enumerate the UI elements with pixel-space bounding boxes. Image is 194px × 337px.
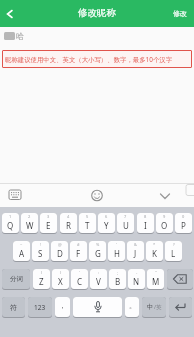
button[interactable]: @ [51, 241, 68, 261]
staticText: 9 [163, 214, 166, 219]
staticText: - [136, 270, 138, 275]
staticText: O [161, 220, 168, 231]
staticText: I [144, 220, 147, 231]
staticText: & [134, 242, 137, 247]
staticText: ; [117, 270, 119, 275]
staticText: ' [79, 270, 80, 275]
staticText: K [152, 248, 157, 259]
staticText: @ [58, 242, 62, 247]
button[interactable]: ~ [13, 241, 30, 261]
staticText: 符 [10, 303, 17, 312]
staticText: # [77, 242, 80, 247]
button[interactable]: " [147, 269, 164, 289]
staticText: W [26, 220, 34, 231]
staticText: ， [59, 301, 66, 310]
button[interactable]: ) [52, 269, 69, 289]
button[interactable]: 符 [2, 297, 25, 317]
staticText: H [114, 248, 120, 259]
staticText: V [96, 276, 101, 287]
staticText: 6 [105, 214, 108, 219]
button[interactable]: % [89, 241, 106, 261]
staticText: : [98, 270, 100, 275]
staticText: ( [41, 270, 43, 275]
button[interactable]: ? [165, 241, 182, 261]
staticText: N [133, 276, 140, 287]
staticText: 修改 [173, 9, 187, 18]
button[interactable]: - [128, 269, 145, 289]
button[interactable]: 2 [21, 213, 38, 233]
button[interactable]: ( [33, 269, 50, 289]
button[interactable]: 1 [2, 213, 19, 233]
staticText: " [155, 270, 157, 275]
staticText: ~ [20, 242, 23, 247]
button[interactable]: 修改 [173, 9, 187, 18]
staticText: L [171, 248, 176, 259]
button[interactable]: ! [32, 241, 49, 261]
button[interactable]: ' [71, 269, 88, 289]
staticText: 5 [86, 214, 89, 219]
button[interactable]: 5 [79, 213, 96, 233]
button[interactable]: 分词 [2, 269, 30, 289]
button[interactable]: 6 [98, 213, 115, 233]
staticText: 8 [144, 214, 147, 219]
button[interactable] [73, 297, 122, 317]
staticText: J [134, 248, 137, 259]
staticText: * [153, 242, 156, 247]
button[interactable]: 9 [156, 213, 173, 233]
staticText: ' [116, 242, 117, 247]
staticText: C [77, 276, 83, 287]
staticText: 中 [147, 303, 154, 311]
staticText: Y [104, 220, 109, 231]
button[interactable]: : [90, 269, 107, 289]
button[interactable]: # [70, 241, 87, 261]
staticText: 7 [124, 214, 127, 219]
staticText: 2 [28, 214, 31, 219]
staticText: P [181, 220, 186, 231]
staticText: T [85, 220, 90, 231]
staticText: 4 [67, 214, 70, 219]
staticText: S [38, 248, 43, 259]
button[interactable]: & [127, 241, 144, 261]
staticText: ) [60, 270, 62, 275]
button[interactable]: 0 [175, 213, 192, 233]
staticText: 3 [47, 214, 50, 219]
staticText: A [19, 248, 25, 259]
staticText: Z [39, 276, 44, 287]
staticText: 哈 [16, 31, 24, 41]
button[interactable]: ; [109, 269, 126, 289]
staticText: % [96, 242, 100, 247]
button[interactable]: 4 [60, 213, 77, 233]
staticText: M [152, 276, 160, 287]
staticText: ? [173, 242, 175, 247]
button[interactable]: 。 [125, 297, 139, 317]
staticText: /英 [154, 303, 162, 311]
staticText: 0 [182, 214, 185, 219]
staticText: X [58, 276, 63, 287]
staticText: 1 [9, 214, 12, 219]
button[interactable]: * [146, 241, 163, 261]
button[interactable]: 3 [40, 213, 57, 233]
button[interactable] [167, 269, 193, 289]
staticText: ! [40, 242, 42, 247]
staticText: R [66, 220, 71, 231]
button[interactable] [169, 297, 192, 317]
button[interactable]: 123 [28, 297, 52, 317]
button[interactable] [3, 7, 17, 21]
staticText: E [46, 220, 51, 231]
staticText: 。 [129, 301, 136, 310]
staticText: 修改昵称 [78, 7, 116, 19]
button[interactable]: 中 [142, 297, 166, 317]
staticText: D [57, 248, 63, 259]
button[interactable]: 8 [137, 213, 154, 233]
button[interactable]: ， [55, 297, 70, 317]
staticText: 昵称建议使用中文、英文（大小写）、数字，最多10个汉字 [5, 55, 173, 64]
staticText: G [95, 248, 101, 259]
button[interactable]: ' [108, 241, 125, 261]
staticText: F [76, 248, 81, 259]
staticText: B [115, 276, 121, 287]
button[interactable]: 7 [117, 213, 134, 233]
staticText: U [123, 220, 129, 231]
staticText: Q [7, 220, 14, 231]
staticText: 123 [34, 303, 46, 312]
staticText: 分词 [10, 275, 23, 283]
